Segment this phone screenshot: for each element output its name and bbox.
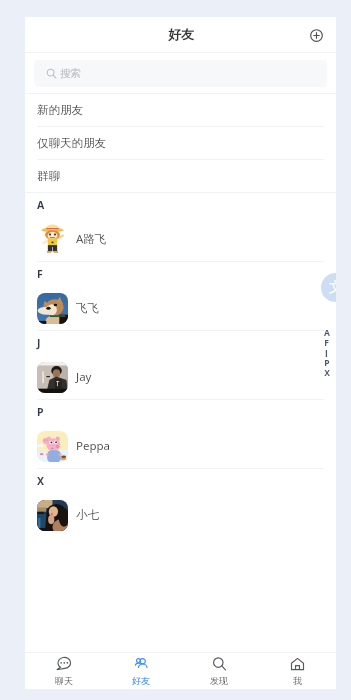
staticText: A (324, 327, 330, 337)
staticText: X (324, 367, 330, 377)
button[interactable]: 新的朋友 (25, 94, 336, 126)
staticText: J (325, 347, 328, 357)
staticText: 好友 (132, 675, 150, 686)
staticText: 群聊 (37, 169, 60, 183)
button[interactable]: 好友 (102, 653, 180, 689)
button[interactable]: A路飞 (25, 217, 336, 261)
staticText: 好友 (168, 26, 194, 42)
staticText: 飞飞 (76, 301, 99, 315)
staticText: F (324, 337, 329, 347)
button[interactable]: 飞飞 (25, 286, 336, 330)
button[interactable]: X (321, 367, 332, 377)
staticText: 发现 (210, 675, 228, 686)
button[interactable]: 聊天 (25, 653, 102, 689)
button[interactable]: Add friend (305, 24, 327, 46)
button[interactable]: 仅聊天的朋友 (25, 127, 336, 159)
button[interactable]: 小七 (25, 493, 336, 537)
button[interactable]: J (321, 347, 332, 357)
button[interactable]: Language (321, 273, 336, 302)
button[interactable]: 发现 (180, 653, 258, 689)
staticText: J (37, 336, 41, 350)
staticText: 新的朋友 (37, 103, 83, 117)
staticText: 文 (329, 279, 336, 297)
staticText: X (37, 474, 45, 488)
staticText: Jay (76, 369, 92, 385)
staticText: 小七 (76, 508, 99, 522)
button[interactable]: 搜索 (34, 60, 327, 87)
staticText: P (324, 357, 330, 367)
button[interactable]: Jay (25, 355, 336, 399)
staticText: A (37, 198, 45, 212)
staticText: 聊天 (55, 675, 73, 686)
button[interactable]: A (321, 327, 332, 337)
staticText: P (37, 405, 44, 419)
staticText: Peppa (76, 438, 111, 454)
staticText: 搜索 (60, 67, 81, 80)
button[interactable]: 群聊 (25, 160, 336, 192)
button[interactable]: P (321, 357, 332, 367)
button[interactable]: 我 (258, 653, 336, 689)
staticText: A路飞 (76, 231, 107, 247)
staticText: 我 (293, 675, 302, 686)
button[interactable]: F (321, 337, 332, 347)
staticText: 仅聊天的朋友 (37, 136, 106, 150)
button[interactable]: Peppa (25, 424, 336, 468)
staticText: F (37, 267, 43, 281)
